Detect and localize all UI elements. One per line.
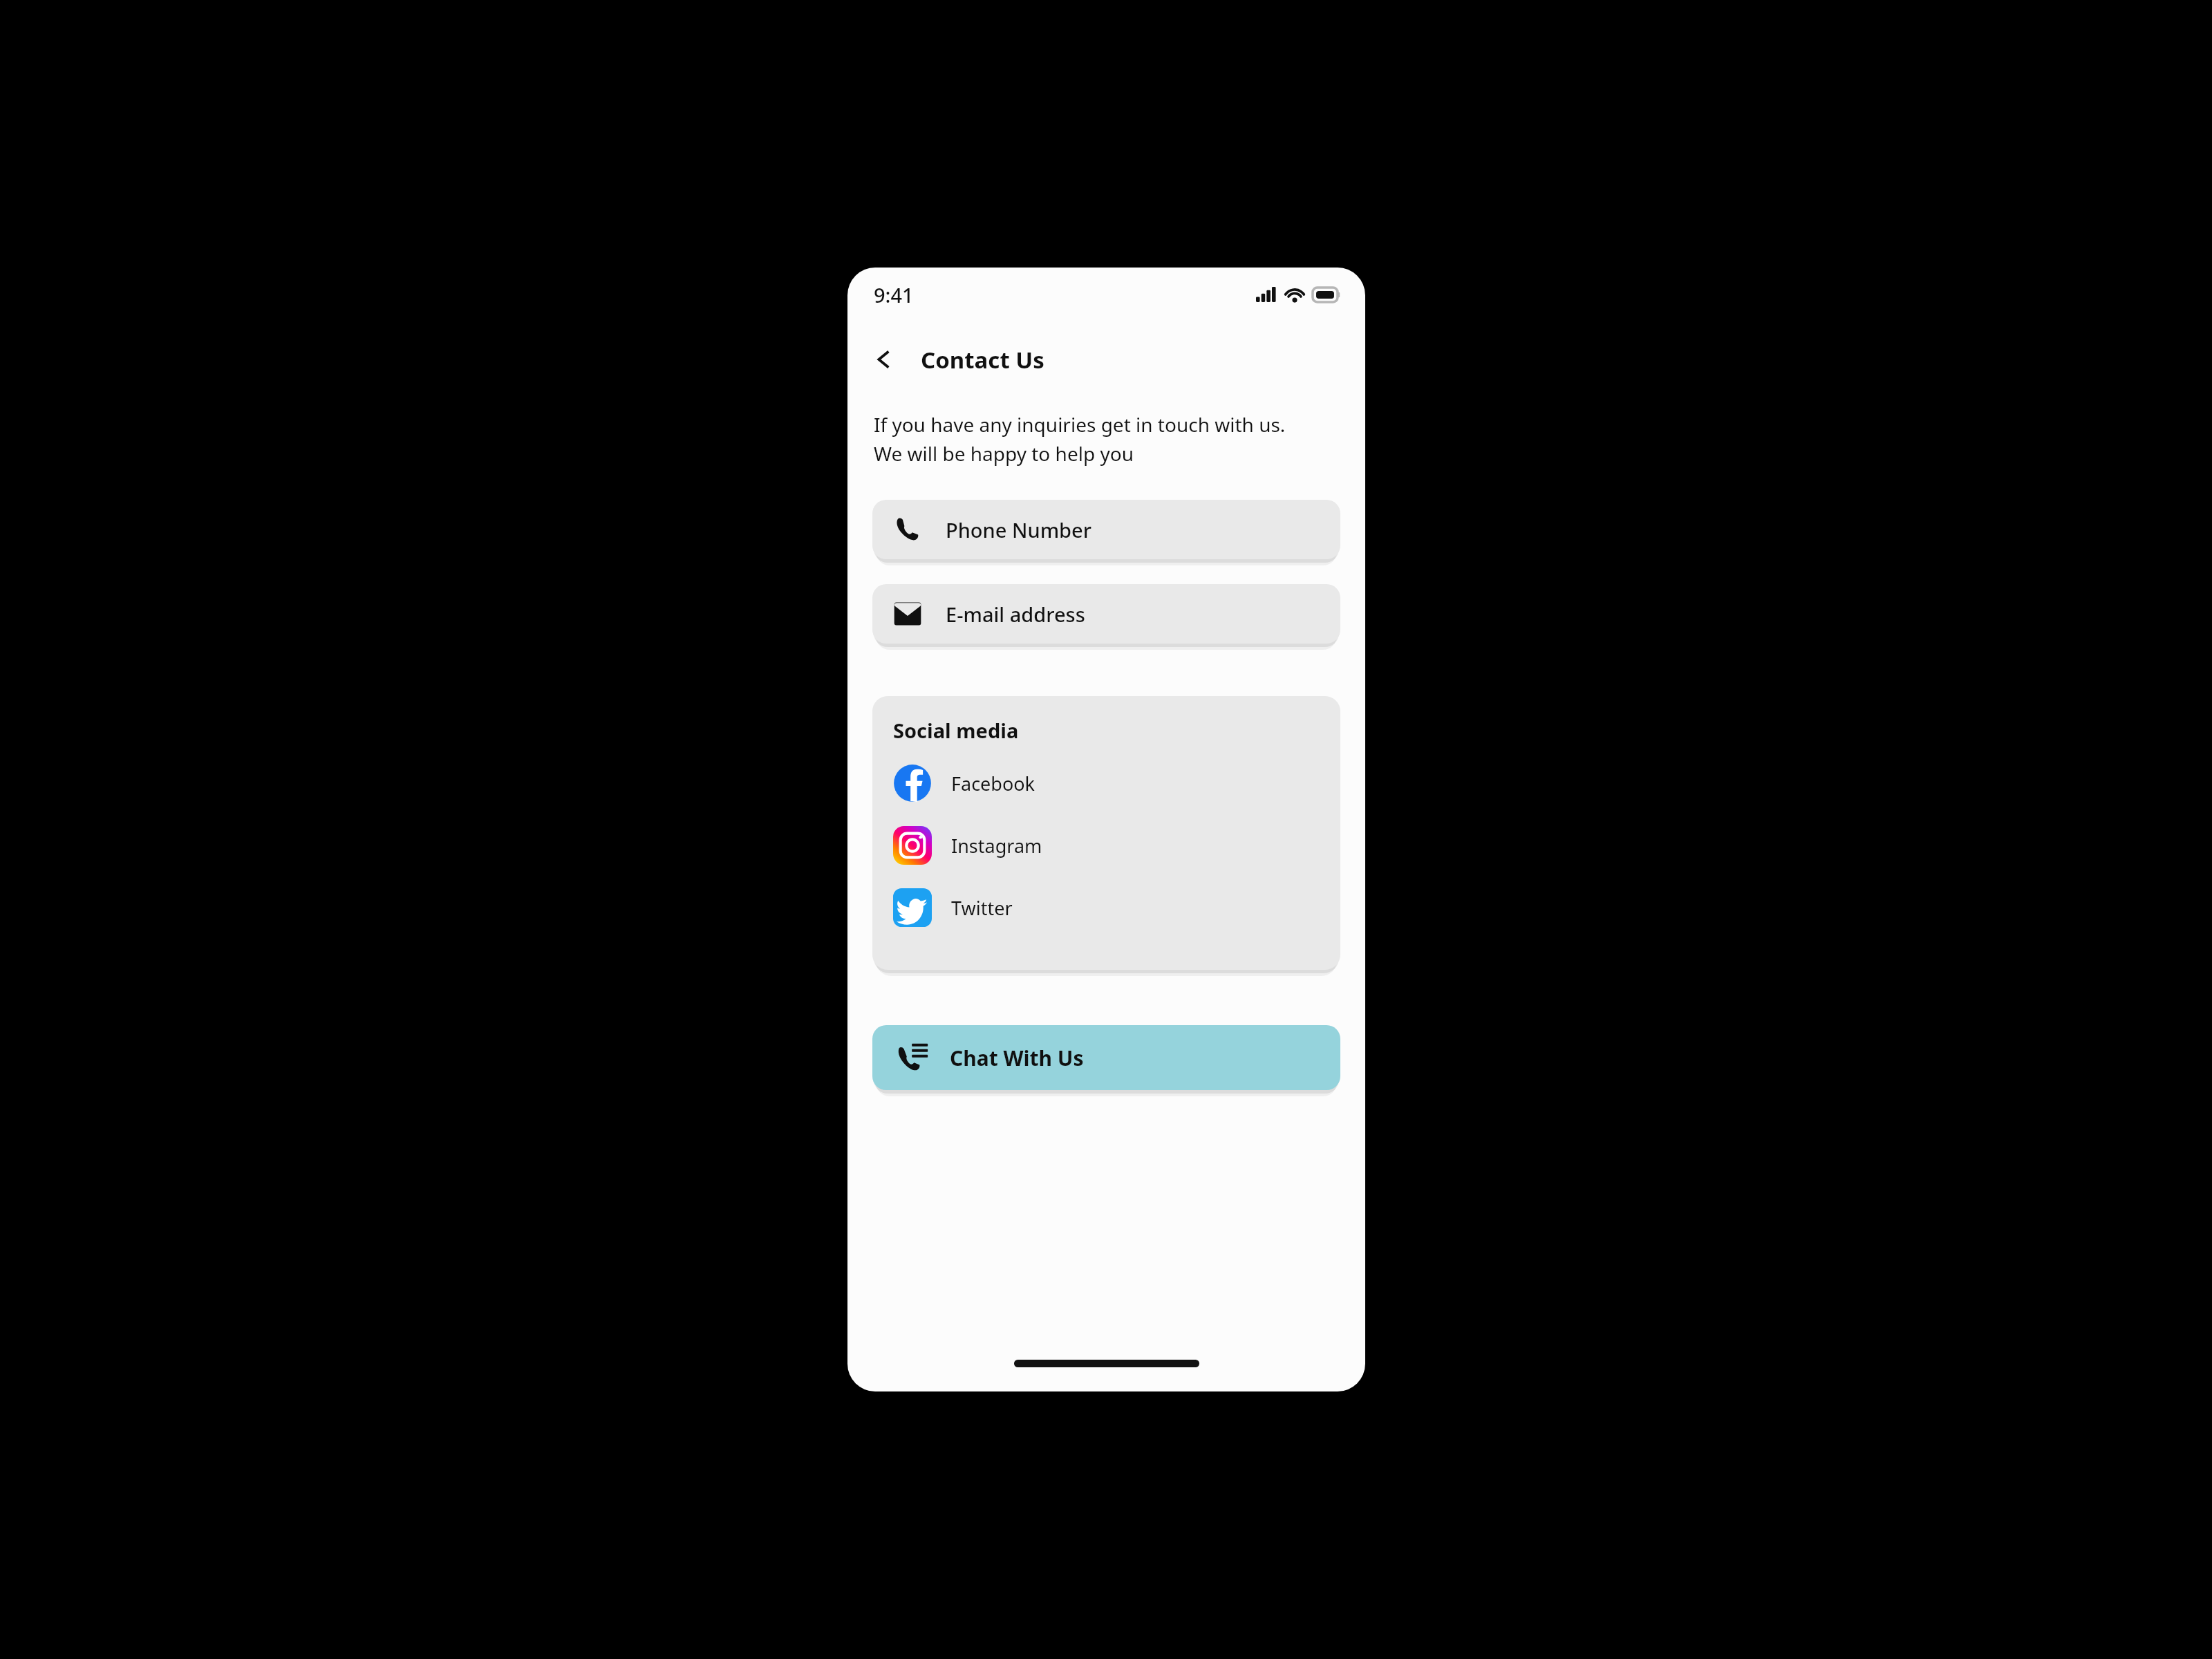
staticText: We will be happy to help you bbox=[874, 440, 1134, 467]
button[interactable]: Instagram bbox=[872, 823, 1340, 868]
button[interactable]: Phone Number bbox=[872, 500, 1340, 559]
staticText: Chat With Us bbox=[950, 1044, 1084, 1072]
staticText: Social media bbox=[893, 717, 1019, 744]
staticText: Contact Us bbox=[921, 344, 1044, 375]
staticText: Phone Number bbox=[946, 516, 1092, 543]
button[interactable]: Back bbox=[863, 338, 906, 381]
button[interactable]: Chat With Us bbox=[872, 1025, 1340, 1090]
staticText: If you have any inquiries get in touch w… bbox=[874, 411, 1286, 438]
staticText: 9:41 bbox=[874, 281, 914, 308]
button[interactable]: Twitter bbox=[872, 885, 1340, 930]
button[interactable]: Facebook bbox=[872, 760, 1340, 806]
button[interactable]: E-mail address bbox=[872, 584, 1340, 644]
staticText: Twitter bbox=[951, 895, 1013, 921]
staticText: Facebook bbox=[951, 771, 1035, 796]
staticText: E-mail address bbox=[946, 601, 1085, 628]
staticText: Instagram bbox=[951, 833, 1042, 859]
